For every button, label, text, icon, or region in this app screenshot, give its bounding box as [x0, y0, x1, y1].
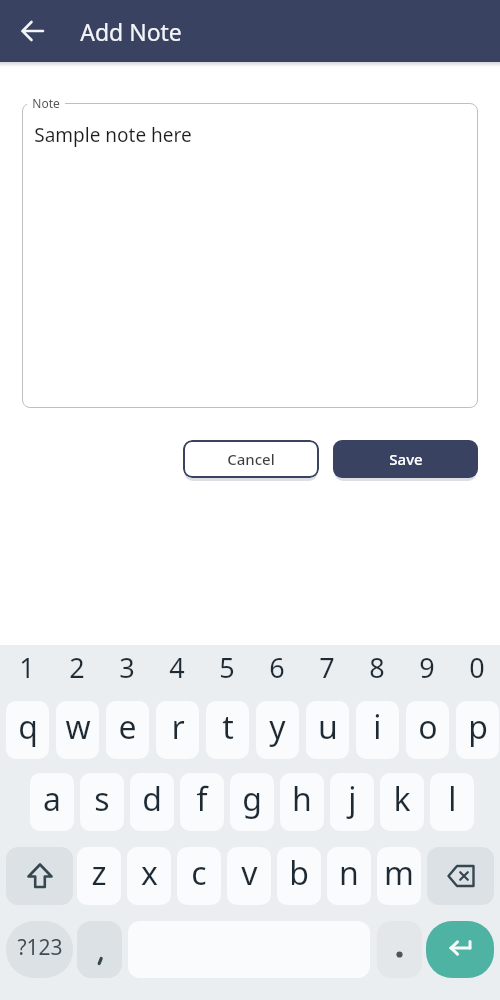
staticText: Sample note here [34, 122, 192, 148]
staticText: p [468, 705, 488, 749]
button[interactable]: f [180, 773, 224, 831]
button[interactable]: m [377, 847, 421, 905]
button[interactable]: b [277, 847, 321, 905]
button[interactable]: Save [333, 440, 478, 478]
staticText: u [318, 705, 338, 749]
button[interactable]: d [130, 773, 174, 831]
staticText: 6 [269, 649, 285, 686]
staticText: c [191, 851, 207, 895]
staticText: z [91, 851, 107, 895]
staticText: w [65, 705, 91, 749]
staticText: n [339, 851, 359, 895]
button[interactable]: 0 [452, 645, 500, 689]
button[interactable]: i [356, 701, 399, 759]
button[interactable]: 4 [152, 645, 201, 689]
staticText: j [348, 777, 357, 821]
staticText: x [141, 851, 158, 895]
staticText: Add Note [80, 16, 182, 47]
button[interactable]: x [127, 847, 171, 905]
button[interactable]: 9 [402, 645, 451, 689]
staticText: t [222, 705, 234, 749]
button[interactable]: y [256, 701, 299, 759]
staticText: 9 [419, 649, 435, 686]
staticText: Note [32, 95, 60, 111]
button[interactable] [377, 921, 422, 978]
staticText: i [373, 705, 382, 749]
staticText: d [142, 777, 162, 821]
button[interactable] [10, 9, 54, 53]
staticText: 0 [469, 649, 485, 686]
button[interactable]: j [330, 773, 374, 831]
button[interactable]: 2 [52, 645, 101, 689]
button[interactable] [426, 921, 494, 978]
button[interactable]: w [56, 701, 99, 759]
staticText: 3 [119, 649, 135, 686]
button[interactable] [427, 847, 494, 905]
staticText: h [292, 777, 312, 821]
button[interactable]: k [380, 773, 424, 831]
staticText: Save [389, 449, 423, 469]
staticText: 2 [69, 649, 85, 686]
button[interactable]: e [106, 701, 149, 759]
button[interactable]: r [156, 701, 199, 759]
button[interactable]: q [6, 701, 49, 759]
button[interactable]: p [456, 701, 499, 759]
button[interactable]: l [430, 773, 474, 831]
staticText: m [384, 851, 414, 895]
button[interactable]: Cancel [183, 440, 319, 478]
button[interactable]: 8 [352, 645, 401, 689]
button[interactable]: h [280, 773, 324, 831]
staticText: a [43, 777, 61, 821]
button[interactable]: 7 [302, 645, 351, 689]
button[interactable]: g [230, 773, 274, 831]
staticText: e [118, 705, 137, 749]
button[interactable]: t [206, 701, 249, 759]
button[interactable]: 6 [252, 645, 301, 689]
staticText: r [171, 705, 185, 749]
button[interactable]: a [30, 773, 74, 831]
button[interactable]: n [327, 847, 371, 905]
button[interactable]: s [80, 773, 124, 831]
staticText: y [269, 705, 286, 749]
button[interactable]: 1 [2, 645, 51, 689]
staticText: 8 [369, 649, 385, 686]
staticText: s [94, 777, 110, 821]
staticText: 7 [319, 649, 335, 686]
button[interactable]: 3 [102, 645, 151, 689]
staticText: q [18, 705, 38, 749]
button[interactable] [77, 921, 122, 978]
button[interactable]: Sample note here [22, 103, 478, 408]
button[interactable]: z [77, 847, 121, 905]
button[interactable]: ?123 [6, 921, 73, 978]
button[interactable]: c [177, 847, 221, 905]
staticText: Cancel [227, 449, 275, 469]
button[interactable]: 5 [202, 645, 251, 689]
staticText: k [393, 777, 411, 821]
button[interactable]: o [406, 701, 449, 759]
staticText: ?123 [17, 933, 63, 962]
staticText: l [448, 777, 457, 821]
button[interactable] [6, 847, 73, 905]
button[interactable]: v [227, 847, 271, 905]
staticText: o [418, 705, 438, 749]
staticText: f [196, 777, 208, 821]
staticText: g [242, 777, 262, 821]
staticText: v [241, 851, 258, 895]
button[interactable]: u [306, 701, 349, 759]
staticText: b [289, 851, 309, 895]
staticText: 4 [169, 649, 185, 686]
staticText: 5 [219, 649, 235, 686]
staticText: 1 [19, 649, 35, 686]
